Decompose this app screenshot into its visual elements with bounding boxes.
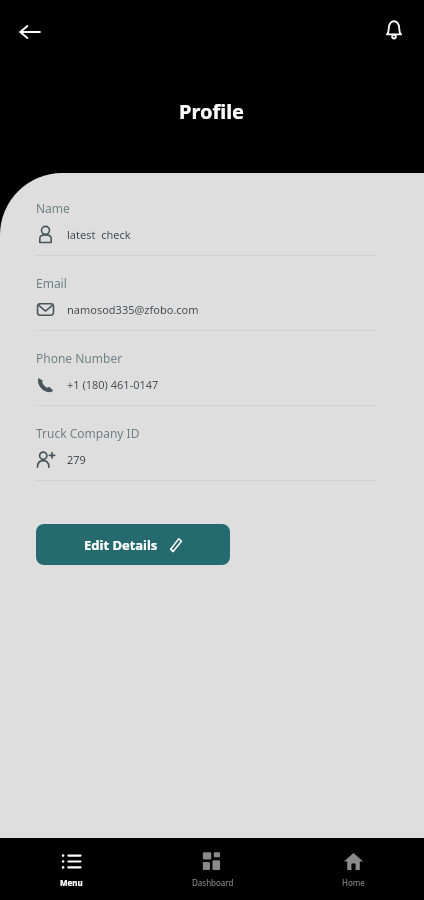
staticText: 279 xyxy=(67,452,86,467)
button[interactable]: Edit Details xyxy=(36,524,230,565)
staticText: Edit Details xyxy=(84,536,158,554)
button[interactable]: Menu xyxy=(0,838,142,900)
staticText: Menu xyxy=(60,877,83,888)
staticText: Email xyxy=(36,275,67,291)
staticText: Name xyxy=(36,200,70,216)
staticText: Truck Company ID xyxy=(36,425,140,441)
staticText: namosod335@zfobo.com xyxy=(67,302,199,317)
button[interactable]: Back xyxy=(8,10,52,54)
button[interactable]: Home xyxy=(283,838,424,900)
button[interactable]: Notifications xyxy=(372,8,416,52)
button[interactable]: Dashboard xyxy=(142,838,283,900)
staticText: Home xyxy=(342,877,365,888)
staticText: Dashboard xyxy=(192,877,234,888)
staticText: latest check xyxy=(67,227,131,242)
staticText: Phone Number xyxy=(36,350,123,366)
staticText: Profile xyxy=(179,98,245,125)
staticText: +1 (180) 461-0147 xyxy=(67,377,159,392)
